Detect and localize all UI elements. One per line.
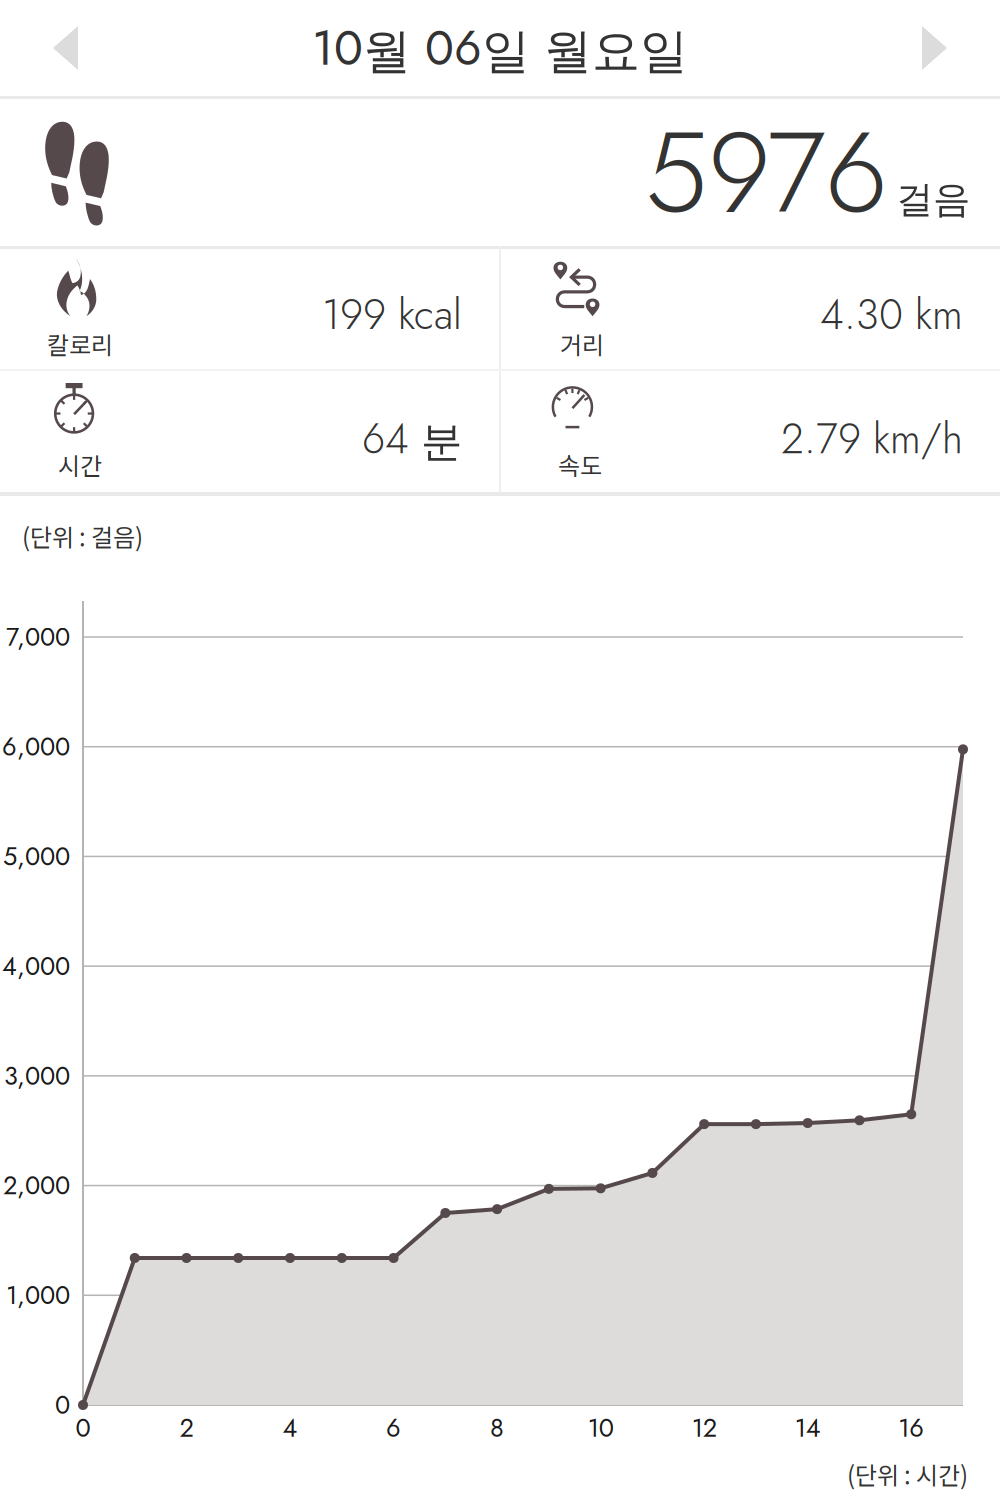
button[interactable]: Previous day [0,0,190,96]
staticText: 10월 06일 월요일 [312,13,688,83]
staticText: (단위 : 걸음) [22,519,143,553]
staticText: 16 [898,1410,924,1446]
staticText: 5976 [645,92,888,253]
staticText: 0 [75,1410,90,1446]
staticText: 8 [490,1410,504,1446]
staticText: 4.30 km [820,285,963,344]
staticText: 2 [179,1410,193,1446]
button[interactable]: Next day [810,0,1000,96]
staticText: 199 kcal [322,285,462,344]
staticText: 5,000 [3,838,70,875]
staticText: 거리 [560,326,604,361]
staticText: 칼로리 [47,326,113,361]
staticText: 6,000 [2,728,70,765]
staticText: 걸음 [896,176,970,223]
staticText: (단위 : 시간) [847,1457,968,1491]
staticText: 10 [588,1410,614,1446]
staticText: 14 [795,1410,821,1446]
staticText: 64 분 [362,409,462,469]
staticText: 속도 [558,447,602,482]
staticText: 2,000 [3,1167,70,1204]
staticText: 4 [283,1410,298,1446]
staticText: 4,000 [2,948,70,984]
staticText: 0 [55,1387,70,1423]
staticText: 시간 [58,447,102,482]
staticText: 6 [386,1410,401,1446]
staticText: 3,000 [4,1058,70,1094]
staticText: 1,000 [6,1277,70,1314]
staticText: 12 [692,1410,717,1446]
staticText: 7,000 [6,619,70,655]
staticText: 2.79 km/h [781,409,963,469]
